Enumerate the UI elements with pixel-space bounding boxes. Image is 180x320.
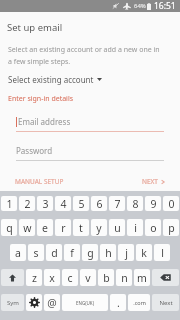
button[interactable]: h [100, 244, 116, 261]
staticText: c [67, 271, 73, 285]
staticText: y [96, 221, 102, 235]
staticText: p [168, 221, 175, 235]
staticText: 2 [24, 197, 31, 211]
button[interactable]: 3 [37, 196, 53, 211]
button[interactable]: @ [44, 294, 60, 311]
staticText: t [79, 221, 83, 235]
button[interactable]: x [44, 269, 60, 286]
staticText: 0 [168, 197, 175, 211]
staticText: 3 [42, 197, 49, 211]
button[interactable]: z [26, 269, 42, 286]
button[interactable]: Select existing account [8, 74, 102, 85]
staticText: Password [16, 145, 53, 156]
staticText: 9 [150, 197, 157, 211]
staticText: Set up email [7, 21, 63, 34]
button[interactable]: q [1, 219, 17, 236]
staticText: 8 [132, 197, 139, 211]
staticText: Sym [7, 299, 19, 307]
staticText: @ [47, 296, 57, 310]
staticText: u [114, 221, 121, 235]
button[interactable]: l [154, 244, 170, 261]
staticText: a [15, 246, 21, 260]
button[interactable]: u [109, 219, 125, 236]
button[interactable]: i [127, 219, 143, 236]
button[interactable]: Sym [1, 294, 24, 311]
button[interactable]: Period [110, 294, 126, 311]
staticText: s [33, 246, 39, 260]
staticText: 16:51 [154, 0, 176, 12]
staticText: d [51, 246, 58, 260]
button[interactable]: Next [152, 294, 179, 311]
staticText: g [87, 246, 94, 260]
button[interactable]: 9 [145, 196, 161, 211]
button[interactable]: s [28, 244, 44, 261]
staticText: .com [133, 299, 146, 306]
button[interactable]: 8 [127, 196, 143, 211]
button[interactable]: c [62, 269, 78, 286]
staticText: o [150, 221, 157, 235]
staticText: w [23, 221, 32, 235]
button[interactable]: o [145, 219, 161, 236]
button[interactable]: b [98, 269, 114, 286]
staticText: Next [159, 299, 173, 307]
button[interactable]: .com [128, 294, 150, 311]
staticText: l [161, 246, 164, 260]
staticText: . [117, 296, 120, 310]
button[interactable]: NEXT [138, 175, 180, 188]
button[interactable]: 2 [19, 196, 35, 211]
button[interactable]: 5 [73, 196, 89, 211]
staticText: Enter sign-in details [8, 94, 74, 104]
button[interactable]: 0 [163, 196, 179, 211]
button[interactable]: k [136, 244, 152, 261]
button[interactable]: Shift [1, 269, 24, 286]
button[interactable]: e [37, 219, 53, 236]
staticText: k [141, 246, 147, 260]
button[interactable]: 7 [109, 196, 125, 211]
staticText: 4 [60, 197, 67, 211]
button[interactable]: Email address [16, 116, 164, 132]
staticText: x [49, 271, 55, 285]
staticText: e [42, 221, 48, 235]
staticText: NEXT [142, 177, 158, 186]
button[interactable]: 4 [55, 196, 71, 211]
button[interactable]: v [80, 269, 96, 286]
staticText: Select existing account [8, 74, 94, 85]
staticText: Select an existing account or add a new … [8, 45, 160, 66]
button[interactable]: Backspace [152, 269, 179, 286]
staticText: 7 [114, 197, 121, 211]
staticText: Email address [18, 116, 71, 127]
staticText: 64% [134, 2, 146, 10]
button[interactable]: w [19, 219, 35, 236]
button[interactable]: g [82, 244, 98, 261]
staticText: b [103, 271, 110, 285]
staticText: 1 [6, 197, 13, 211]
staticText: 5 [78, 197, 85, 211]
button[interactable]: d [46, 244, 62, 261]
button[interactable]: y [91, 219, 107, 236]
staticText: 6 [96, 197, 103, 211]
button[interactable]: t [73, 219, 89, 236]
staticText: n [121, 271, 128, 285]
staticText: MANUAL SETUP [15, 177, 64, 186]
button[interactable]: 6 [91, 196, 107, 211]
button[interactable]: Password [16, 145, 164, 161]
button[interactable]: ENG(UK) [62, 294, 108, 311]
button[interactable]: n [116, 269, 132, 286]
button[interactable]: m [134, 269, 150, 286]
staticText: j [125, 246, 128, 260]
button[interactable]: p [163, 219, 179, 236]
staticText: i [134, 221, 137, 235]
button[interactable]: MANUAL SETUP [0, 175, 68, 188]
button[interactable]: f [64, 244, 80, 261]
staticText: h [105, 246, 112, 260]
staticText: ENG(UK) [76, 300, 94, 306]
button[interactable]: j [118, 244, 134, 261]
button[interactable]: a [10, 244, 26, 261]
staticText: q [6, 221, 13, 235]
button[interactable]: r [55, 219, 71, 236]
staticText: z [32, 271, 37, 285]
button[interactable]: Settings [26, 294, 42, 311]
staticText: m [137, 271, 147, 285]
staticText: v [85, 271, 91, 285]
button[interactable]: 1 [1, 196, 17, 211]
